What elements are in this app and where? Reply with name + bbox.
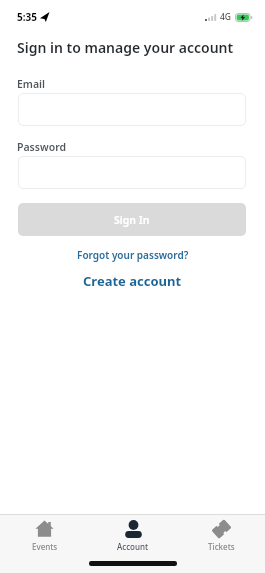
staticText: Sign In: [114, 213, 150, 227]
staticText: Tickets: [208, 541, 235, 552]
staticText: Password: [17, 140, 67, 154]
staticText: 5:35: [17, 10, 37, 24]
button[interactable]: Tickets: [177, 520, 265, 552]
staticText: Account: [117, 541, 149, 552]
button[interactable]: Account: [89, 520, 177, 552]
staticText: 4G: [220, 11, 232, 23]
staticText: Sign in to manage your account: [17, 38, 234, 57]
button[interactable]: Events: [0, 520, 89, 552]
button[interactable]: Sign In: [18, 203, 246, 236]
staticText: Email: [17, 77, 46, 91]
button[interactable]: Forgot your password?: [77, 248, 189, 262]
staticText: Events: [32, 541, 58, 552]
button[interactable]: Create account: [83, 272, 182, 290]
button[interactable]: [18, 156, 246, 189]
button[interactable]: [18, 93, 246, 126]
